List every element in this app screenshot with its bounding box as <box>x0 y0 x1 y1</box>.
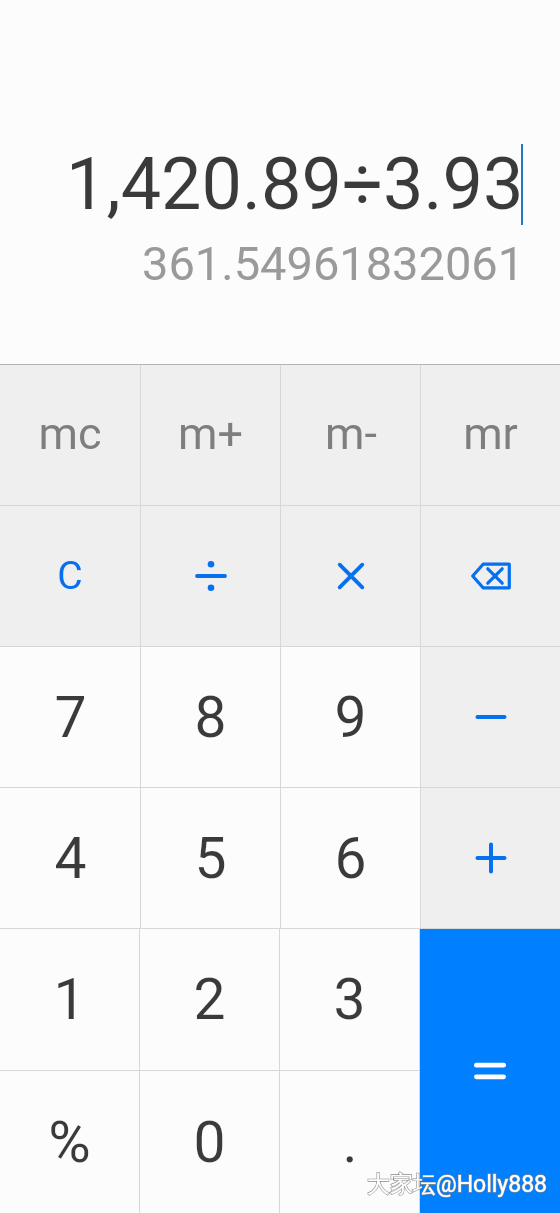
button[interactable]: 3 <box>280 929 419 1070</box>
staticText: 1 <box>53 966 86 1033</box>
button[interactable]: 6 <box>281 788 420 928</box>
staticText: 1,420.89÷3.93 <box>66 142 524 226</box>
button[interactable]: Plus <box>421 788 560 928</box>
button[interactable]: 0 <box>140 1071 279 1213</box>
staticText: mc <box>38 407 102 460</box>
staticText: mr <box>463 407 518 460</box>
button[interactable]: m- <box>281 365 420 505</box>
button[interactable]: 9 <box>281 647 420 787</box>
staticText: 4 <box>54 825 87 892</box>
button[interactable]: Backspace <box>421 506 560 646</box>
button[interactable]: 2 <box>140 929 279 1070</box>
staticText: 3 <box>333 966 366 1033</box>
staticText: 大家坛@Holly888 <box>367 1170 548 1199</box>
staticText: 361.54961832061 <box>142 236 525 291</box>
button[interactable]: Equals <box>420 929 560 1213</box>
staticText: 5 <box>194 825 227 892</box>
button[interactable]: 1 <box>0 929 139 1070</box>
staticText: % <box>48 1108 91 1176</box>
button[interactable]: mc <box>0 365 140 505</box>
button[interactable]: C <box>0 506 140 646</box>
button[interactable]: Minus <box>421 647 560 787</box>
staticText: 9 <box>334 684 367 751</box>
staticText: 8 <box>194 684 227 751</box>
staticText: . <box>342 1109 358 1176</box>
staticText: m+ <box>178 407 243 460</box>
button[interactable]: . <box>280 1071 419 1213</box>
staticText: 7 <box>54 684 87 751</box>
button[interactable]: Divide <box>141 506 280 646</box>
button[interactable]: 7 <box>0 647 140 787</box>
button[interactable]: 4 <box>0 788 140 928</box>
button[interactable]: % <box>0 1071 139 1213</box>
staticText: C <box>57 553 83 599</box>
button[interactable]: 8 <box>141 647 280 787</box>
button[interactable]: m+ <box>141 365 280 505</box>
staticText: 大家坛@Holly888 <box>367 1170 548 1199</box>
staticText: 2 <box>193 966 226 1033</box>
staticText: m- <box>325 407 377 460</box>
button[interactable]: 5 <box>141 788 280 928</box>
button[interactable]: Multiply <box>281 506 420 646</box>
button[interactable]: mr <box>421 365 560 505</box>
staticText: 6 <box>334 825 367 892</box>
staticText: 0 <box>193 1109 226 1176</box>
